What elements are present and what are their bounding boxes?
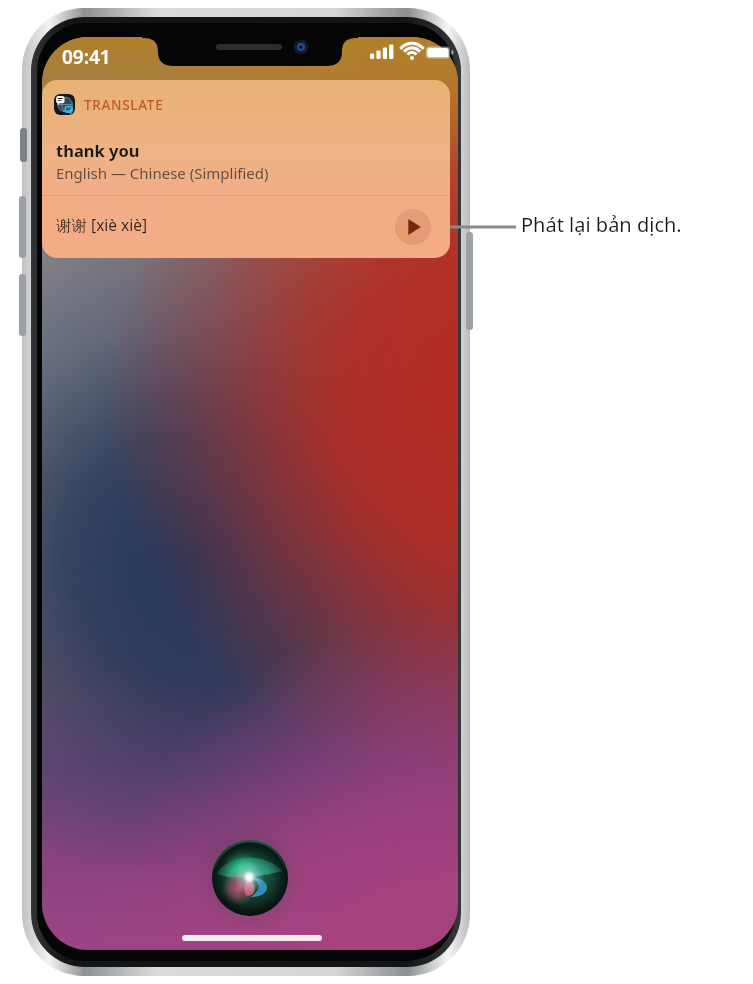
staticText: 09:41: [62, 44, 111, 70]
staticText: thank you: [56, 139, 140, 161]
button[interactable]: TRANSLATE: [42, 80, 450, 258]
button[interactable]: Play translation again: [395, 209, 431, 245]
staticText: Phát lại bản dịch.: [521, 211, 682, 238]
staticText: 谢谢 [xiè xiè]: [56, 214, 148, 235]
button[interactable]: Siri: [212, 840, 288, 916]
staticText: TRANSLATE: [84, 96, 164, 114]
staticText: English — Chinese (Simplified): [56, 163, 269, 183]
